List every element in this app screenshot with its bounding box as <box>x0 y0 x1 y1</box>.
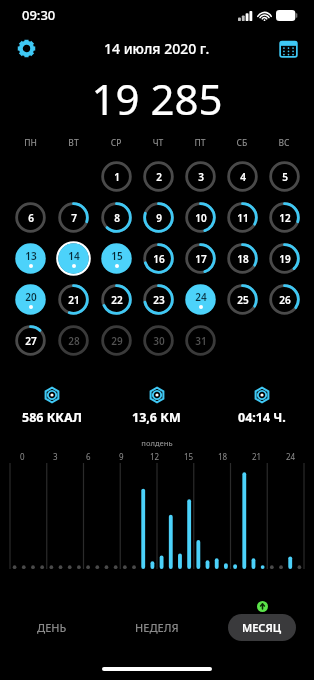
staticText: 19 285 <box>0 70 314 127</box>
staticText: 21 <box>68 293 80 307</box>
button[interactable]: Calendar <box>270 30 306 66</box>
staticText: 13 <box>25 249 37 263</box>
button[interactable]: 29 <box>100 324 133 357</box>
staticText: 9 <box>119 451 124 462</box>
button[interactable]: 13,6 КМ <box>104 387 209 426</box>
staticText: 20 <box>25 290 37 304</box>
button[interactable]: 16 <box>142 242 175 275</box>
staticText: СБ <box>221 137 263 149</box>
button[interactable]: 28 <box>57 324 90 357</box>
staticText: 2 <box>156 170 162 184</box>
staticText: ЧТ <box>137 137 179 149</box>
staticText: 15 <box>111 249 123 263</box>
staticText: 19 <box>279 252 291 266</box>
button[interactable]: 22 <box>100 283 133 316</box>
button[interactable]: Settings <box>8 30 44 66</box>
staticText: ВТ <box>52 137 95 149</box>
staticText: 1 <box>114 170 120 184</box>
staticText: 7 <box>71 211 77 225</box>
button[interactable]: 27 <box>14 324 47 357</box>
staticText: 18 <box>237 252 249 266</box>
button[interactable]: 04:14 Ч. <box>209 387 314 426</box>
button[interactable]: 24 <box>184 283 217 316</box>
staticText: 10 <box>195 211 207 225</box>
button[interactable]: НЕДЕЛЯ <box>121 614 193 641</box>
staticText: 9 <box>156 211 162 225</box>
staticText: 16 <box>153 252 165 266</box>
button[interactable]: 12 <box>268 201 301 234</box>
staticText: 12 <box>279 211 291 225</box>
staticText: ПН <box>9 137 52 149</box>
staticText: 5 <box>282 170 288 184</box>
staticText: 6 <box>86 451 91 462</box>
button[interactable]: 20 <box>14 283 47 316</box>
staticText: 27 <box>25 334 37 348</box>
button[interactable]: 17 <box>184 242 217 275</box>
button[interactable]: 5 <box>268 160 301 193</box>
staticText: 14 <box>68 249 80 263</box>
button[interactable]: 6 <box>14 201 47 234</box>
staticText: 18 <box>218 451 228 462</box>
button[interactable]: 4 <box>226 160 259 193</box>
staticText: 8 <box>114 211 120 225</box>
staticText: 30 <box>153 334 165 348</box>
staticText: 24 <box>195 290 207 304</box>
button[interactable]: 2 <box>142 160 175 193</box>
button[interactable]: 14 <box>57 242 90 275</box>
button[interactable]: 9 <box>142 201 175 234</box>
staticText: 0 <box>20 451 25 462</box>
staticText: 24 <box>286 451 296 462</box>
button[interactable]: 11 <box>226 201 259 234</box>
staticText: ДЕНЬ <box>37 620 67 635</box>
button[interactable]: 3 <box>184 160 217 193</box>
staticText: 26 <box>279 293 291 307</box>
staticText: 6 <box>28 211 34 225</box>
button[interactable]: 15 <box>100 242 133 275</box>
staticText: 11 <box>237 211 249 225</box>
staticText: 09:30 <box>22 6 56 24</box>
staticText: 31 <box>195 334 207 348</box>
button[interactable]: 13 <box>14 242 47 275</box>
staticText: 15 <box>184 451 194 462</box>
button[interactable]: 31 <box>184 324 217 357</box>
staticText: 586 ККАЛ <box>22 409 82 426</box>
button[interactable]: 21 <box>57 283 90 316</box>
button[interactable]: 586 ККАЛ <box>0 387 104 426</box>
button[interactable]: 30 <box>142 324 175 357</box>
staticText: полдень <box>0 438 314 448</box>
button[interactable]: 10 <box>184 201 217 234</box>
staticText: 3 <box>198 170 204 184</box>
staticText: ВС <box>263 137 305 149</box>
button[interactable]: 7 <box>57 201 90 234</box>
staticText: 4 <box>240 170 246 184</box>
button[interactable]: 8 <box>100 201 133 234</box>
staticText: СР <box>95 137 137 149</box>
staticText: ПТ <box>179 137 221 149</box>
staticText: 21 <box>252 451 262 462</box>
staticText: НЕДЕЛЯ <box>135 620 179 635</box>
button[interactable]: 26 <box>268 283 301 316</box>
staticText: 3 <box>53 451 58 462</box>
staticText: 25 <box>237 293 249 307</box>
staticText: 17 <box>195 252 207 266</box>
staticText: 04:14 Ч. <box>238 409 286 426</box>
button[interactable]: 25 <box>226 283 259 316</box>
staticText: 12 <box>150 451 160 462</box>
button[interactable]: ДЕНЬ <box>23 614 81 641</box>
staticText: 28 <box>68 334 80 348</box>
button[interactable]: 1 <box>100 160 133 193</box>
staticText: 14 июля 2020 г. <box>104 39 210 58</box>
staticText: МЕСЯЦ <box>242 620 282 635</box>
staticText: 22 <box>111 293 123 307</box>
staticText: 23 <box>153 293 165 307</box>
button[interactable]: 19 <box>268 242 301 275</box>
staticText: 29 <box>111 334 123 348</box>
button[interactable]: 23 <box>142 283 175 316</box>
staticText: 13,6 КМ <box>132 409 181 426</box>
button[interactable]: МЕСЯЦ <box>228 614 296 641</box>
button[interactable]: 18 <box>226 242 259 275</box>
